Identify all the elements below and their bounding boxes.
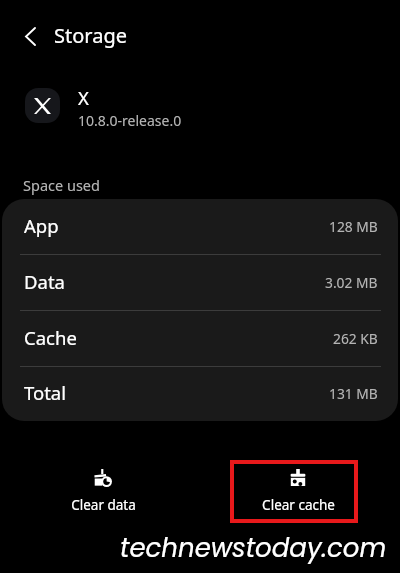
staticText: technewstoday.com (120, 530, 387, 566)
button[interactable]: Back (13, 19, 47, 53)
staticText: 3.02 MB (325, 273, 378, 292)
staticText: 128 MB (329, 217, 378, 236)
staticText: Clear cache (262, 496, 335, 514)
button[interactable]: App (2, 199, 398, 255)
button[interactable]: Cache (2, 311, 398, 367)
staticText: Storage (54, 22, 127, 49)
button[interactable]: Clear data (71, 469, 136, 514)
staticText: Data (24, 269, 65, 294)
button[interactable]: Clear cache (262, 469, 335, 514)
button[interactable]: Data (2, 255, 398, 311)
staticText: X (78, 85, 89, 110)
staticText: 10.8.0-release.0 (78, 111, 182, 130)
button[interactable]: Total (2, 367, 398, 421)
staticText: 131 MB (329, 384, 378, 403)
staticText: Clear data (71, 496, 136, 514)
staticText: Cache (24, 325, 77, 350)
staticText: Total (24, 380, 67, 405)
staticText: Space used (23, 175, 100, 195)
staticText: 262 KB (333, 329, 378, 348)
staticText: App (24, 213, 59, 238)
